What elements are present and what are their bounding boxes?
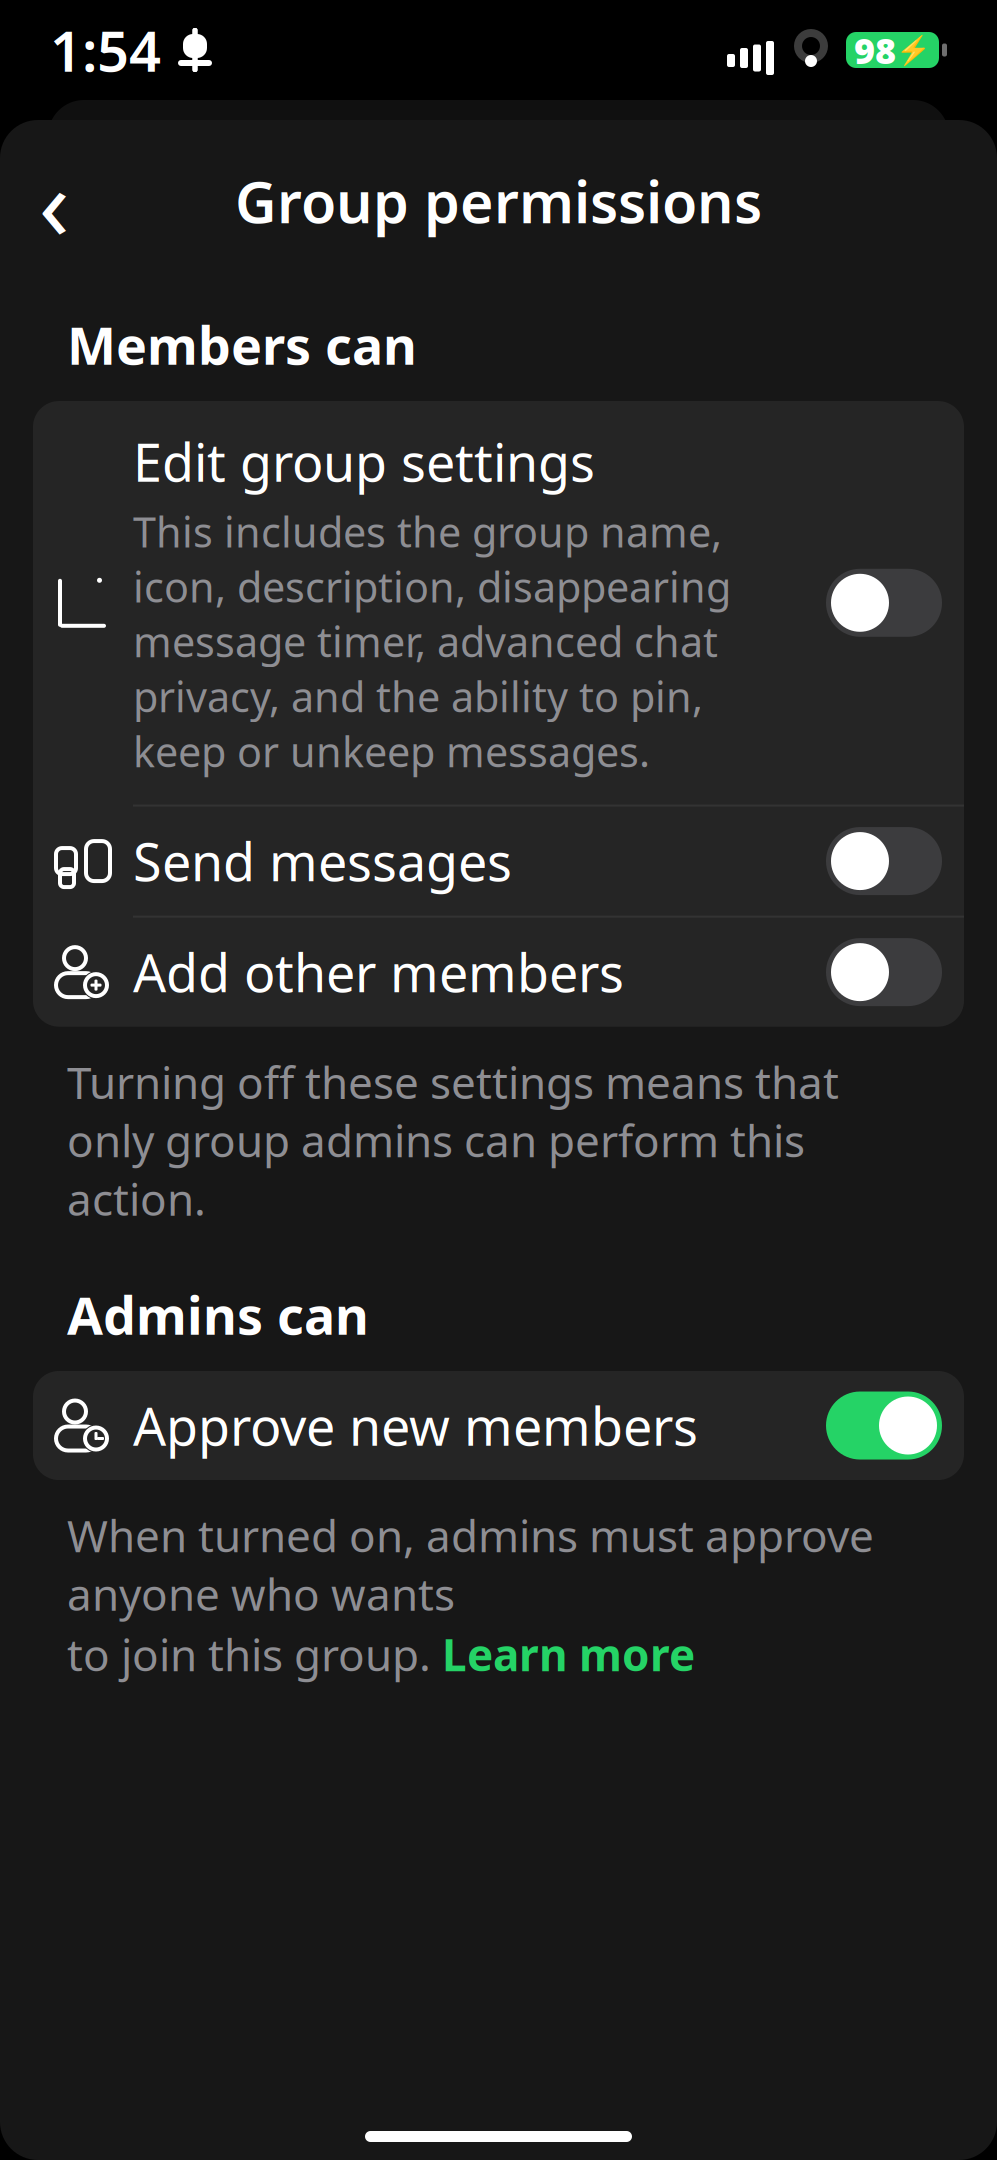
- staticText: to join this group.: [67, 1625, 442, 1683]
- staticText: Add other members: [133, 938, 624, 1007]
- button[interactable]: Approve new members: [33, 1371, 964, 1480]
- button[interactable]: Edit group settings: [33, 401, 964, 805]
- staticText: ‹: [38, 134, 69, 268]
- staticText: When turned on, admins must approve anyo…: [67, 1506, 874, 1623]
- staticText: 1:54: [50, 13, 161, 87]
- staticText: 98: [854, 26, 896, 74]
- staticText: ⚡: [896, 34, 931, 66]
- staticText: Edit group settings: [133, 427, 595, 496]
- staticText: Group permissions: [235, 163, 762, 239]
- staticText: Turning off these settings means that on…: [67, 1053, 839, 1228]
- staticText: Learn more: [442, 1625, 695, 1683]
- button[interactable]: Send messages: [33, 806, 964, 916]
- button[interactable]: Learn more: [442, 1625, 695, 1683]
- staticText: Approve new members: [133, 1391, 698, 1460]
- staticText: This includes the group name, icon, desc…: [133, 504, 731, 778]
- button[interactable]: Add other members: [33, 918, 964, 1027]
- staticText: Members can: [67, 310, 417, 379]
- staticText: Admins can: [67, 1280, 369, 1349]
- button[interactable]: Back: [14, 161, 94, 241]
- staticText: Send messages: [133, 826, 512, 896]
